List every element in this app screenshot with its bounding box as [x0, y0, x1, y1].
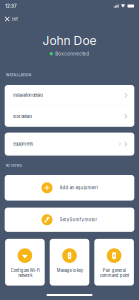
staticText: ACTIONS [5, 163, 21, 168]
staticText: Box details [13, 114, 32, 119]
button[interactable]: Pair general command point [94, 239, 134, 286]
staticText: Pair general command point [100, 268, 129, 278]
staticText: Set a Somfy motor [59, 217, 97, 222]
staticText: Manage io key [56, 268, 82, 273]
button[interactable]: Installation details [5, 85, 134, 106]
staticText: Exit [12, 16, 18, 21]
button[interactable]: Equipments [5, 133, 134, 156]
button[interactable]: Box details [5, 106, 134, 127]
staticText: Box connected [55, 51, 89, 56]
button[interactable]: Exit [0, 12, 23, 26]
button[interactable]: Set a Somfy motor [5, 208, 134, 232]
staticText: John Doe [42, 33, 96, 48]
staticText: Installation details [13, 93, 43, 98]
staticText: INSTALLATION [5, 73, 31, 77]
staticText: Add an equipment [59, 185, 97, 190]
button[interactable]: Add an equipment [5, 175, 134, 201]
staticText: 12:37 [5, 3, 17, 9]
staticText: Equipments [13, 142, 33, 146]
button[interactable]: Configure Wi-Fi network [5, 239, 45, 286]
button[interactable]: Manage io key [50, 239, 89, 286]
staticText: 2 [118, 142, 120, 146]
staticText: Configure Wi-Fi network [10, 268, 39, 278]
